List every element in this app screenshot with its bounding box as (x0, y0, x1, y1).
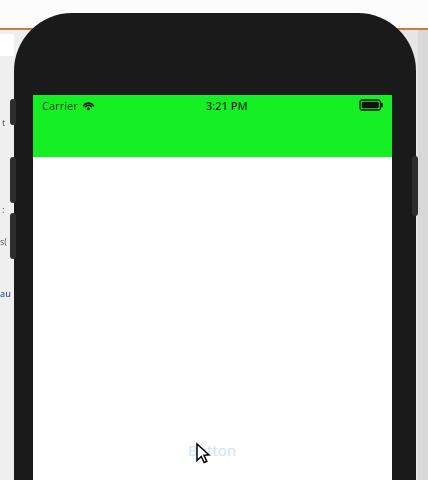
staticText: : (2, 203, 5, 215)
staticText: t (2, 116, 6, 128)
other: Battery full (360, 100, 383, 110)
other: Pointer (0, 0, 428, 480)
button[interactable]: Button (174, 433, 251, 467)
staticText: Button (188, 440, 237, 460)
staticText: 3:21 PM (206, 98, 248, 113)
other: Wi-Fi signal (82, 99, 95, 112)
staticText: au (0, 287, 11, 299)
staticText: s( (0, 235, 8, 247)
staticText: Carrier (42, 98, 78, 113)
